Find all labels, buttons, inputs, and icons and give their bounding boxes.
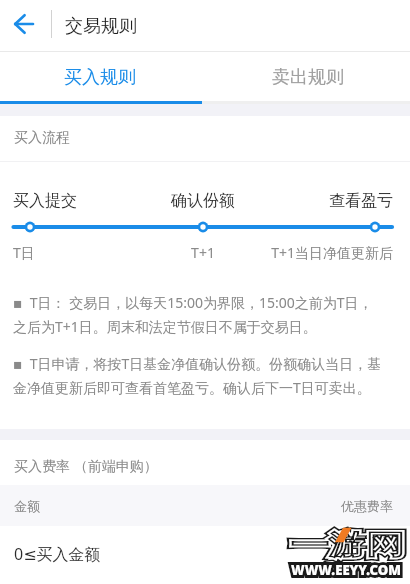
staticText: ▪ T日申请，将按T日基金净值确认份额。份额确认当日，基 金净值更新后即可查看首… <box>13 354 382 397</box>
staticText: 一游网 <box>291 528 404 562</box>
staticText: 查看盈亏 <box>0 191 393 211</box>
staticText: WWW.EEYY.COM <box>291 560 401 579</box>
staticText: 买入流程 <box>14 129 70 147</box>
staticText: 0≤买入金额 <box>14 543 101 565</box>
staticText: 优惠费率 <box>341 498 393 514</box>
button[interactable]: 买入规则 <box>0 53 205 102</box>
staticText: 买入费率 （前端申购） <box>14 456 158 475</box>
button[interactable]: 卖出规则 <box>205 53 410 102</box>
staticText: 卖出规则 <box>272 66 344 89</box>
staticText: 交易规则 <box>65 15 137 38</box>
staticText: T+1当日净值更新后 <box>0 243 393 262</box>
staticText: 金额 <box>14 498 40 514</box>
button[interactable]: Back <box>2 2 46 46</box>
staticText: 一游网 <box>291 528 404 562</box>
staticText: 一游网 <box>291 528 404 562</box>
staticText: 买入规则 <box>64 66 136 89</box>
staticText: ▪ T日： 交易日，以每天15:00为界限，15:00之前为T日， 之后为T+1… <box>13 293 373 336</box>
staticText: T日 <box>13 243 35 262</box>
staticText: WWW.EEYY.COM <box>291 560 401 579</box>
staticText: 买入提交 <box>13 191 77 211</box>
staticText: T+1 <box>13 243 393 262</box>
staticText: 确认份额 <box>13 191 393 211</box>
